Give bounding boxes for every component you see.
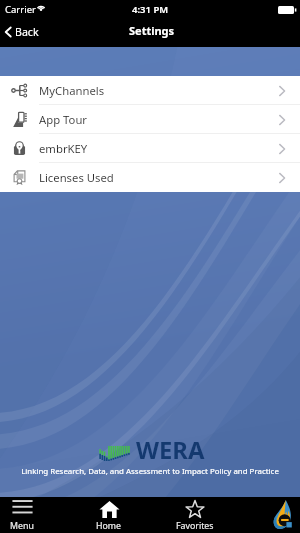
- button[interactable]: Favorites: [171, 497, 219, 533]
- button[interactable]: MyChannels: [0, 76, 300, 105]
- staticText: Linking Research, Data, and Assessment t…: [21, 466, 279, 477]
- button[interactable]: embrKEY: [0, 134, 300, 163]
- button[interactable]: Back: [0, 21, 47, 43]
- staticText: Back: [15, 25, 39, 39]
- staticText: WERA: [136, 434, 205, 466]
- staticText: Carrier: [5, 3, 36, 16]
- button[interactable]: Menu: [0, 497, 46, 533]
- staticText: Favorites: [176, 520, 214, 532]
- staticText: App Tour: [39, 112, 88, 127]
- button[interactable]: Licenses Used: [0, 163, 300, 192]
- button[interactable]: embr: [265, 497, 300, 533]
- staticText: embrKEY: [39, 141, 88, 156]
- button[interactable]: App Tour: [0, 105, 300, 134]
- staticText: 4:31 PM: [132, 3, 169, 16]
- staticText: Menu: [10, 520, 34, 532]
- button[interactable]: Home: [85, 497, 133, 533]
- staticText: Licenses Used: [39, 170, 114, 185]
- staticText: MyChannels: [39, 83, 105, 98]
- staticText: Settings: [129, 23, 175, 38]
- staticText: Home: [96, 520, 122, 532]
